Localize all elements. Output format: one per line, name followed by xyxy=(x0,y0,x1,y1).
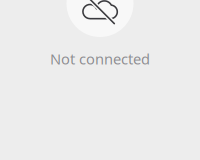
staticText: Not connected xyxy=(50,49,150,68)
